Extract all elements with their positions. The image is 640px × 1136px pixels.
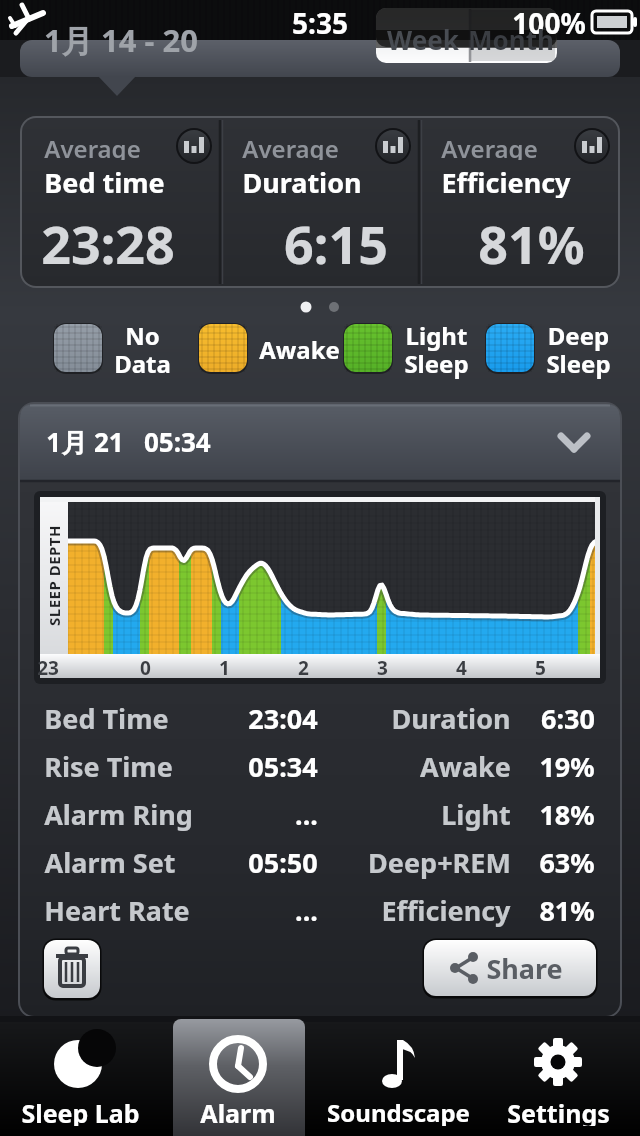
staticText: 1月 14 - 20	[44, 19, 198, 61]
staticText: 3	[377, 655, 388, 677]
staticText: Bed Time	[44, 700, 169, 736]
staticText: Soundscape	[327, 1096, 470, 1126]
button[interactable]	[0, 1022, 160, 1136]
button[interactable]	[176, 128, 212, 164]
staticText: ...	[295, 892, 318, 928]
staticText: 63%	[539, 844, 595, 880]
staticText: 05:34	[248, 748, 318, 784]
staticText: Deep+REM	[368, 844, 511, 880]
staticText: 19%	[539, 748, 595, 784]
staticText: Heart Rate	[44, 892, 190, 928]
button[interactable]: Month	[464, 16, 557, 62]
staticText: Light Sleep	[404, 319, 469, 380]
staticText: Light	[441, 796, 511, 832]
staticText: Sleep Lab	[21, 1096, 140, 1126]
staticText: 6:15	[284, 208, 388, 266]
staticText: Efficiency	[441, 164, 571, 198]
staticText: 18%	[539, 796, 595, 832]
staticText: Alarm Ring	[44, 796, 193, 832]
button[interactable]	[480, 1022, 640, 1136]
staticText: SLEEP DEPTH	[44, 525, 64, 626]
staticText: Week	[387, 22, 459, 57]
staticText: Awake	[259, 333, 340, 366]
button[interactable]	[44, 940, 100, 998]
button[interactable]	[574, 128, 610, 164]
staticText: Average	[242, 132, 339, 160]
staticText: 100%	[512, 4, 586, 38]
staticText: 23	[37, 655, 59, 677]
staticText: Settings	[507, 1096, 610, 1126]
staticText: 5:35	[292, 4, 348, 38]
button[interactable]	[375, 128, 411, 164]
button[interactable]: 1月 21 05:34	[46, 420, 326, 464]
button[interactable]	[320, 1022, 480, 1136]
staticText: 81%	[539, 892, 595, 928]
button[interactable]	[20, 404, 620, 480]
staticText: Efficiency	[381, 892, 511, 928]
staticText: Duration	[391, 700, 511, 736]
staticText: 0	[140, 655, 151, 677]
staticText: Alarm	[200, 1096, 276, 1126]
staticText: 6:30	[541, 700, 595, 736]
staticText: No Data	[114, 319, 171, 380]
staticText: Average	[441, 132, 538, 160]
staticText: 81%	[478, 208, 585, 266]
staticText: Awake	[420, 748, 511, 784]
staticText: 1月 21 05:34	[46, 424, 211, 460]
button[interactable]: Week	[376, 16, 470, 62]
staticText: Rise Time	[44, 748, 173, 784]
staticText: Alarm Set	[44, 844, 176, 880]
button[interactable]	[160, 1022, 320, 1136]
staticText: Month	[468, 22, 554, 57]
staticText: 5	[535, 655, 546, 677]
staticText: Share	[486, 950, 563, 987]
staticText: 05:50	[248, 844, 318, 880]
staticText: Deep Sleep	[546, 319, 611, 380]
staticText: 23:04	[248, 700, 318, 736]
staticText: Bed time	[44, 164, 165, 198]
staticText: 23:28	[41, 208, 175, 266]
staticText: 1	[219, 655, 230, 677]
staticText: Average	[44, 132, 141, 160]
staticText: 4	[456, 655, 467, 677]
staticText: 2	[298, 655, 309, 677]
button[interactable]	[424, 940, 596, 996]
staticText: Duration	[242, 164, 362, 198]
staticText: ...	[295, 796, 318, 832]
